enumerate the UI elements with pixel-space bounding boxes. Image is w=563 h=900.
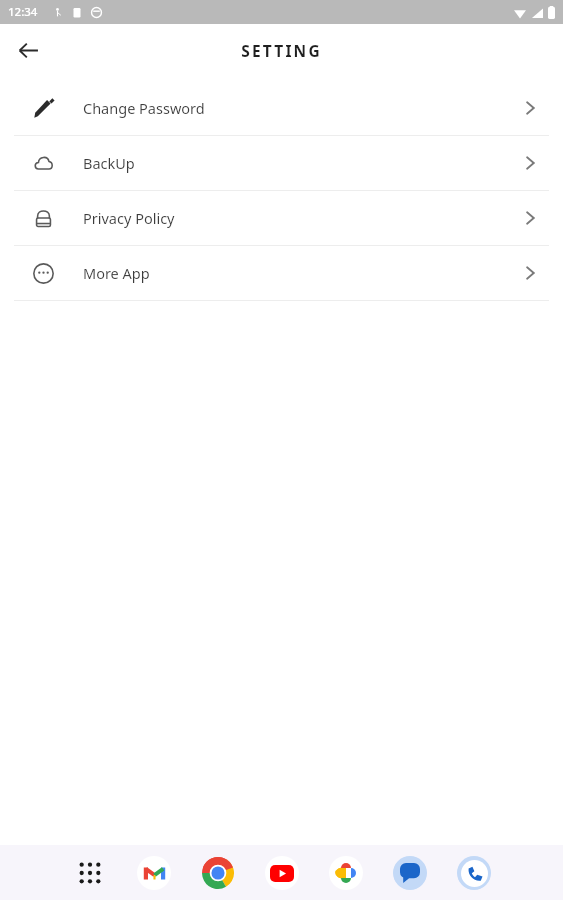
- button[interactable]: More App: [0, 246, 563, 300]
- button[interactable]: Phone: [453, 852, 495, 894]
- button[interactable]: Back: [8, 30, 48, 70]
- button[interactable]: All apps: [69, 852, 111, 894]
- button[interactable]: Change Password: [0, 81, 563, 135]
- button[interactable]: Messages: [389, 852, 431, 894]
- button[interactable]: Gmail: [133, 852, 175, 894]
- button[interactable]: YouTube: [261, 852, 303, 894]
- staticText: Privacy Policy: [83, 208, 175, 228]
- button[interactable]: Privacy Policy: [0, 191, 563, 245]
- button[interactable]: Photos: [325, 852, 367, 894]
- staticText: More App: [83, 263, 150, 283]
- button[interactable]: BackUp: [0, 136, 563, 190]
- staticText: BackUp: [83, 153, 135, 173]
- staticText: 12:34: [8, 4, 38, 20]
- staticText: Change Password: [83, 98, 205, 118]
- staticText: SETTING: [241, 40, 322, 61]
- button[interactable]: Chrome: [197, 852, 239, 894]
